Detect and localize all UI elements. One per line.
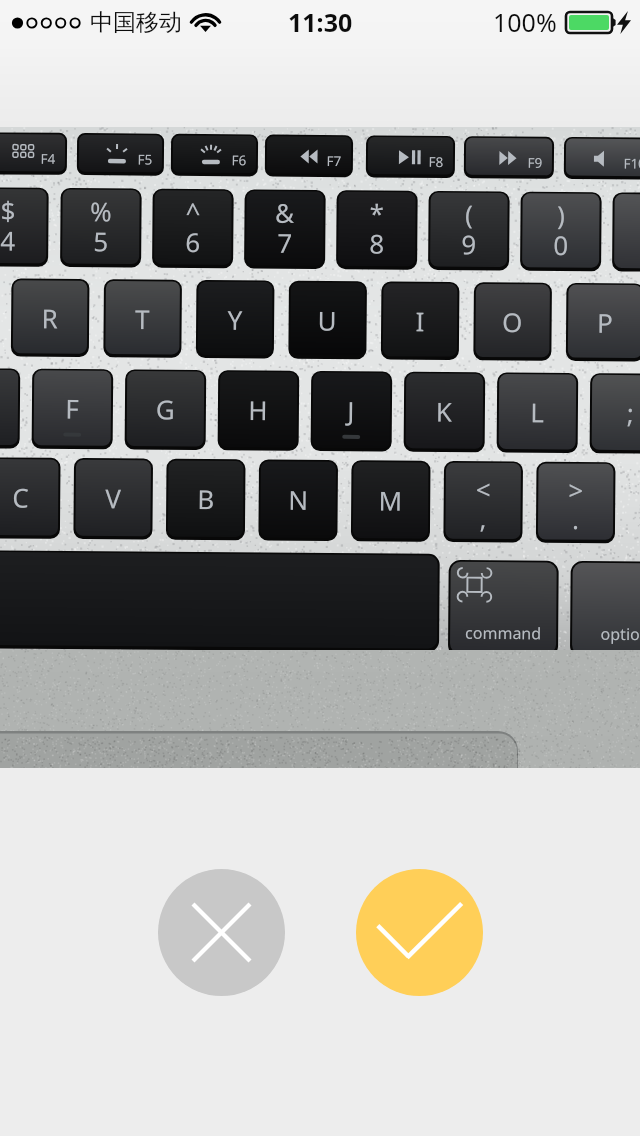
staticText: 中国移动	[90, 8, 182, 37]
button[interactable]: Cancel	[158, 869, 285, 996]
button[interactable]: Confirm	[356, 869, 483, 996]
staticText: 11:30	[288, 5, 353, 39]
staticText: 100%	[493, 5, 557, 39]
